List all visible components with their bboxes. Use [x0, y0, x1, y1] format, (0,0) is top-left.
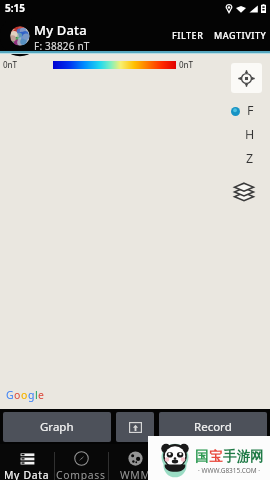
button[interactable]: Graph: [3, 412, 111, 442]
button[interactable]: FILTER: [167, 23, 209, 47]
button[interactable]: Z: [225, 150, 255, 167]
button[interactable]: WMM: [108, 444, 162, 480]
staticText: o: [14, 388, 21, 402]
button[interactable]: Settings: [162, 444, 216, 480]
staticText: F: [247, 102, 254, 119]
staticText: G: [6, 388, 14, 402]
staticText: More: [229, 468, 258, 480]
staticText: Graph: [40, 419, 74, 435]
staticText: WMM: [120, 468, 151, 480]
staticText: 0nT: [3, 59, 18, 70]
button[interactable]: MAGTIVITY: [209, 23, 270, 47]
staticText: My Data: [4, 468, 50, 480]
button[interactable]: My Data: [0, 444, 54, 480]
staticText: My Data: [34, 21, 87, 39]
staticText: FILTER: [172, 29, 204, 41]
button[interactable]: Export: [116, 412, 154, 442]
staticText: H: [245, 126, 255, 143]
button[interactable]: My location: [231, 63, 262, 93]
staticText: Record: [194, 419, 232, 435]
button[interactable]: H: [225, 126, 255, 143]
staticText: g: [28, 388, 35, 402]
staticText: Settings: [166, 468, 212, 480]
staticText: · WWW.G8315.COM ·: [198, 466, 261, 475]
staticText: 5:15: [5, 1, 25, 15]
staticText: l: [35, 388, 38, 402]
staticText: F: 38826 nT: [34, 39, 90, 53]
button[interactable]: More: [216, 444, 270, 480]
button[interactable]: Compass: [54, 444, 108, 480]
button[interactable]: Record: [159, 412, 267, 442]
staticText: o: [21, 388, 28, 402]
button[interactable]: Layers: [233, 181, 254, 202]
button[interactable]: F: [225, 102, 255, 119]
staticText: 手游网: [223, 448, 264, 465]
staticText: MAGTIVITY: [214, 29, 267, 41]
staticText: 国: [195, 448, 209, 465]
staticText: 0nT: [179, 59, 194, 70]
staticText: Compass: [56, 468, 106, 480]
staticText: e: [38, 388, 44, 402]
staticText: 宝: [209, 448, 223, 465]
staticText: Z: [246, 150, 254, 167]
